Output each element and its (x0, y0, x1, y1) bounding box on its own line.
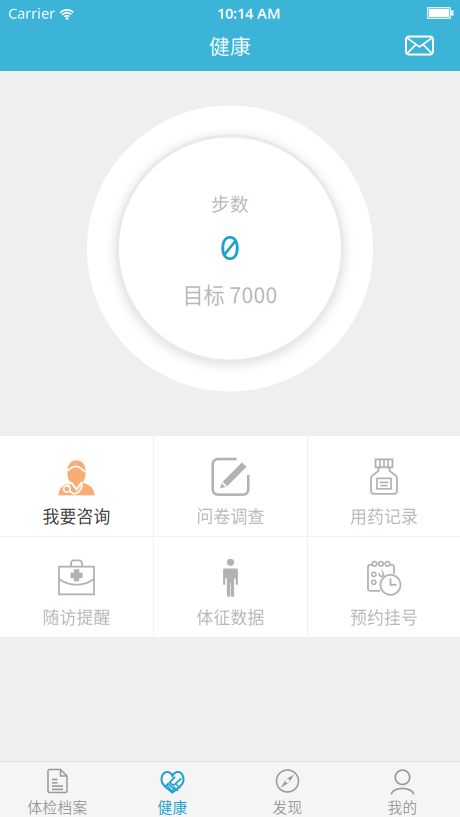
button[interactable]: 体检档案 (0, 762, 115, 817)
staticText: 随访提醒 (42, 604, 110, 629)
button[interactable]: 用药记录 (308, 436, 460, 536)
button[interactable]: 发现 (230, 762, 345, 817)
button[interactable]: 体征数据 (154, 537, 307, 637)
staticText: 我要咨询 (42, 503, 110, 528)
button[interactable]: Messages (393, 28, 460, 68)
staticText: 问卷调查 (196, 503, 264, 528)
staticText: 0 (219, 228, 240, 268)
staticText: 用药记录 (350, 503, 418, 528)
staticText: 预约挂号 (350, 604, 418, 629)
staticText: 健康 (157, 796, 187, 817)
staticText: 体检档案 (27, 796, 87, 817)
button[interactable]: 我的 (345, 762, 460, 817)
button[interactable]: 预约挂号 (308, 537, 460, 637)
staticText: 健康 (209, 30, 251, 60)
staticText: 10:14 AM (217, 3, 281, 23)
staticText: 发现 (272, 796, 302, 817)
staticText: 步数 (211, 190, 249, 217)
button[interactable]: 健康 (115, 762, 230, 817)
staticText: 我的 (387, 796, 417, 817)
staticText: Carrier (8, 3, 55, 23)
staticText: 体征数据 (196, 604, 264, 629)
button[interactable]: 随访提醒 (0, 537, 153, 637)
staticText: 目标 7000 (182, 279, 277, 309)
button[interactable]: 问卷调查 (154, 436, 307, 536)
button[interactable]: 我要咨询 (0, 436, 153, 536)
